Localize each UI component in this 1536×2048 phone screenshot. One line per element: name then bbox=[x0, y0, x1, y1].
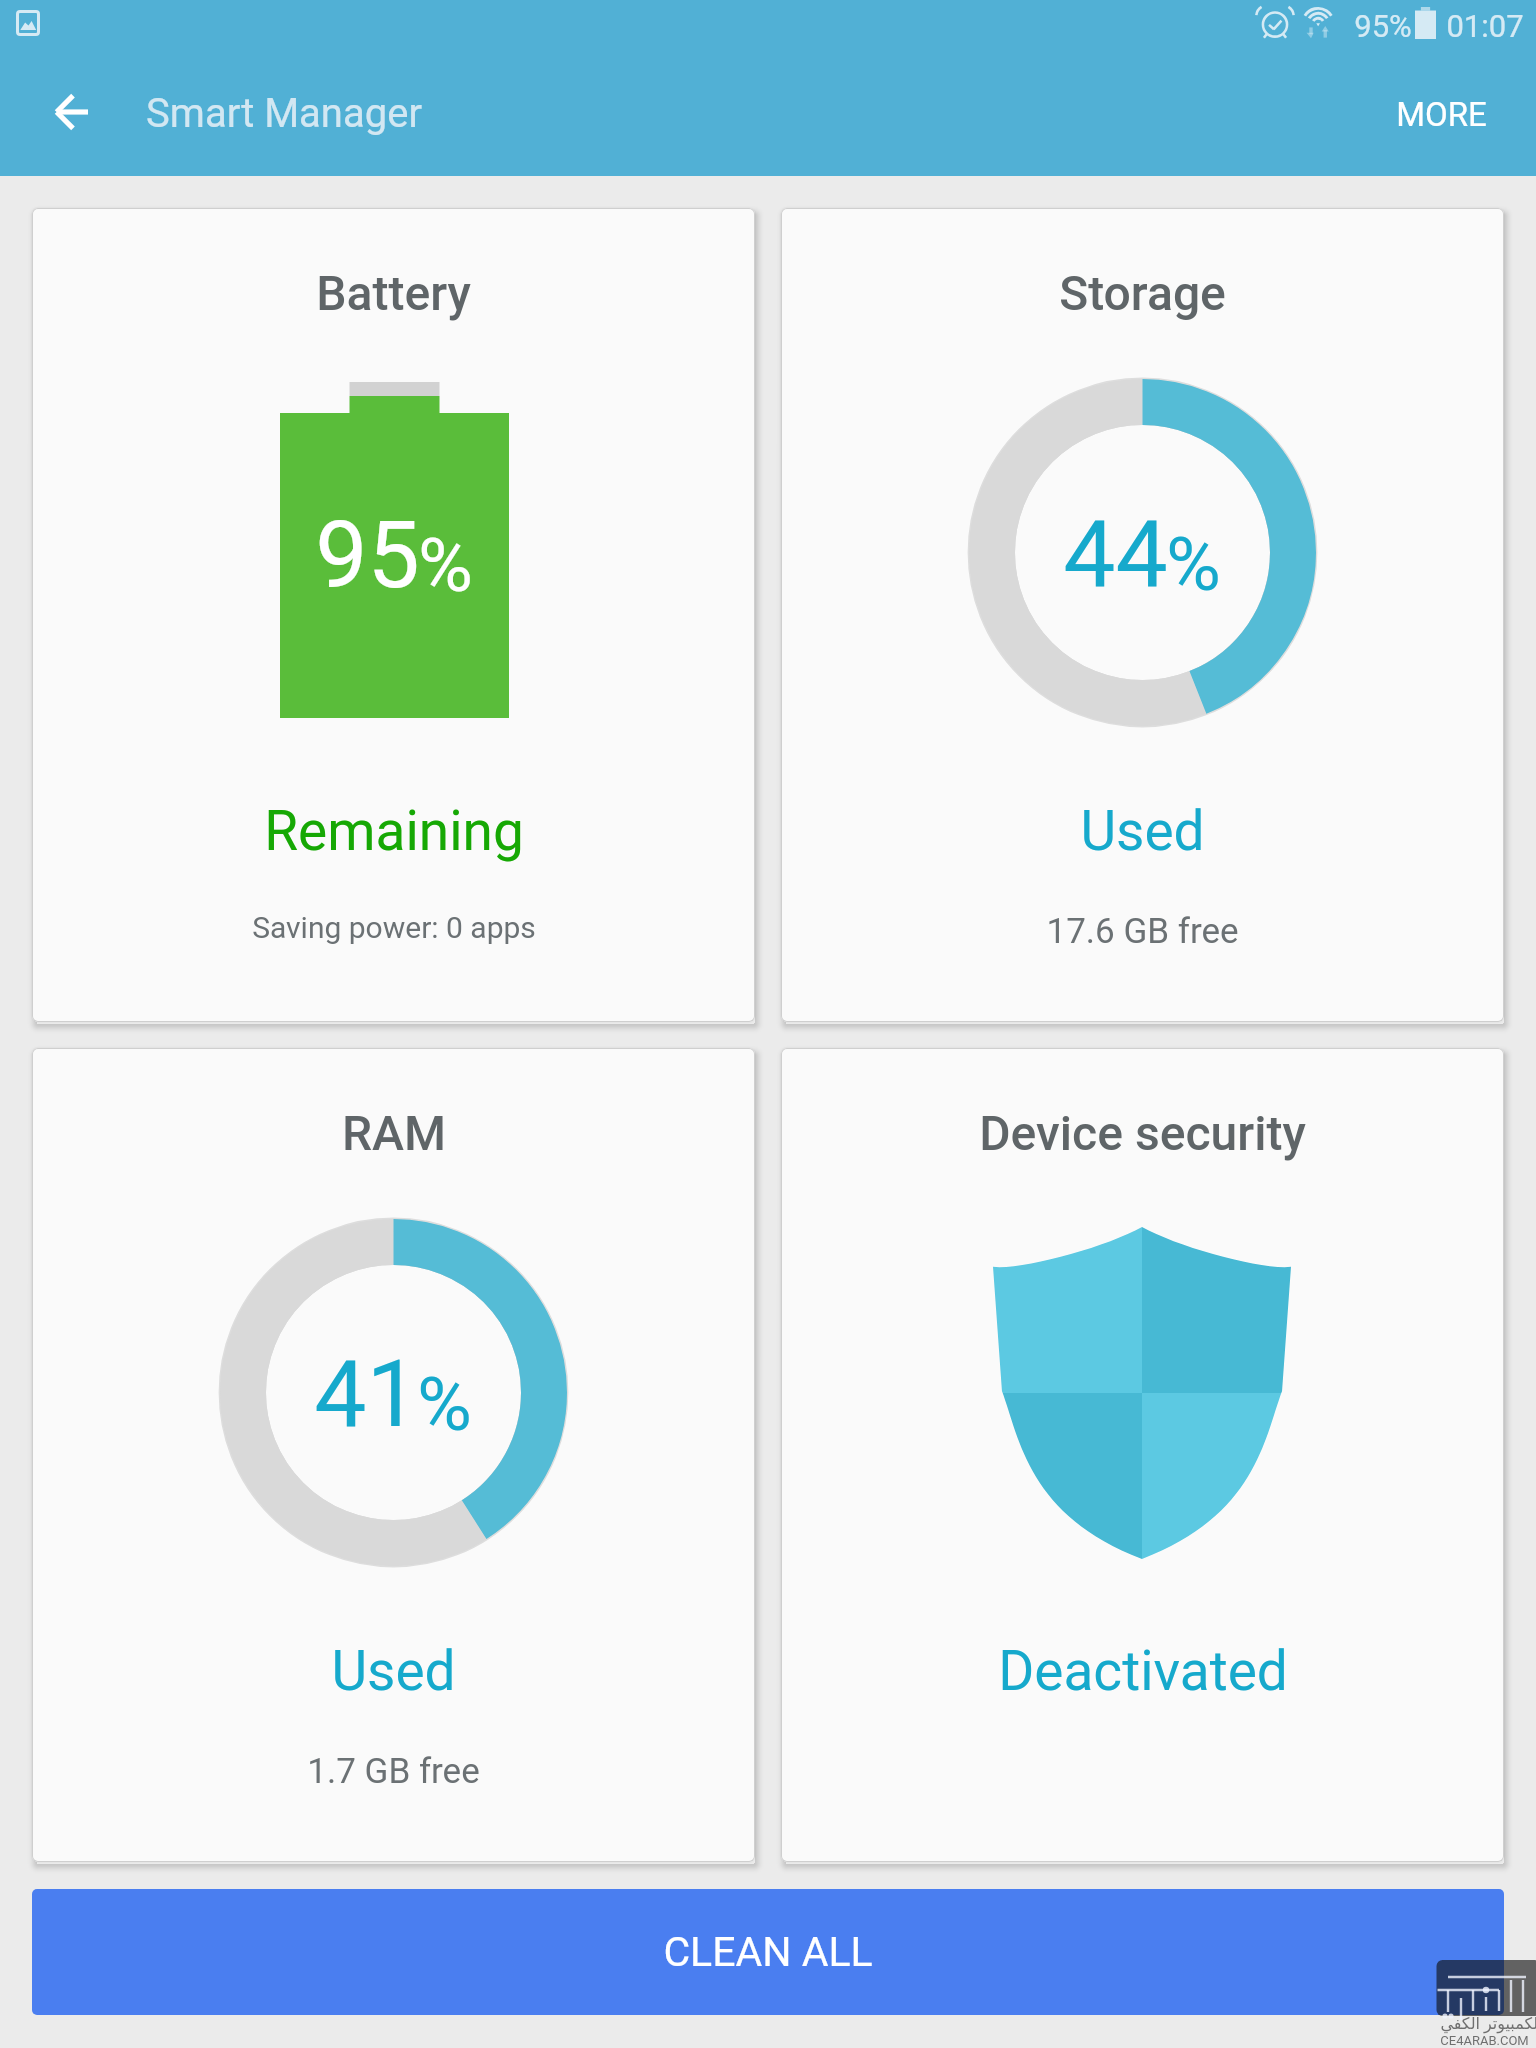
staticText: CE4ARAB.COM bbox=[1440, 2033, 1529, 2048]
staticText: % bbox=[417, 1360, 472, 1448]
staticText: MORE bbox=[1396, 95, 1487, 134]
button[interactable]: MORE bbox=[1356, 52, 1536, 176]
staticText: Saving power: 0 apps bbox=[252, 910, 536, 945]
button[interactable]: CLEAN ALL bbox=[32, 1889, 1504, 2015]
staticText: Remaining bbox=[264, 799, 524, 863]
staticText: 17.6 GB free bbox=[1046, 911, 1239, 952]
staticText: Smart Manager bbox=[146, 90, 422, 137]
button[interactable]: RAM bbox=[32, 1048, 755, 1862]
button[interactable]: Storage bbox=[781, 208, 1504, 1022]
staticText: Deactivated bbox=[998, 1639, 1288, 1703]
staticText: 44 bbox=[1063, 500, 1168, 609]
staticText: % bbox=[1166, 520, 1221, 608]
staticText: 95% bbox=[1354, 8, 1412, 44]
staticText: 95 bbox=[315, 501, 420, 610]
button[interactable]: Device security bbox=[781, 1048, 1504, 1862]
staticText: 01:07 bbox=[1446, 8, 1524, 44]
staticText: Used bbox=[1080, 799, 1205, 863]
staticText: الكمبيوتر الكفي bbox=[1440, 2014, 1536, 2033]
staticText: CLEAN ALL bbox=[663, 1928, 873, 1976]
staticText: Used bbox=[331, 1639, 456, 1703]
staticText: % bbox=[418, 521, 473, 609]
staticText: Device security bbox=[979, 1105, 1306, 1161]
staticText: RAM bbox=[342, 1105, 446, 1161]
button[interactable]: Navigate up bbox=[0, 52, 124, 176]
staticText: 1.7 GB free bbox=[307, 1751, 480, 1792]
staticText: Battery bbox=[316, 265, 471, 321]
staticText: 41 bbox=[314, 1340, 419, 1449]
button[interactable]: Battery bbox=[32, 208, 755, 1022]
staticText: Storage bbox=[1059, 265, 1226, 321]
